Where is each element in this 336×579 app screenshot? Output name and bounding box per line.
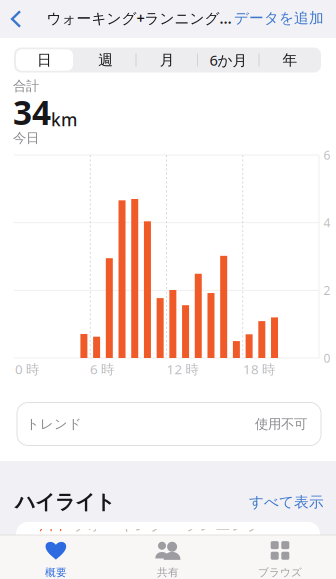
staticText: データを追加 (234, 9, 324, 27)
staticText: 0 時 (15, 360, 39, 378)
staticText: 合計 (13, 78, 39, 94)
staticText: トレンド (26, 416, 82, 432)
staticText: ブラウズ (258, 566, 302, 579)
staticText: 今日 (13, 130, 39, 146)
staticText: 日 (37, 51, 52, 69)
button[interactable]: データを追加 (231, 6, 327, 30)
staticText: ウォーキング+ランニング… (46, 8, 231, 28)
button[interactable]: 週 (75, 47, 136, 72)
button[interactable]: 概要 (0, 539, 112, 579)
staticText: 月 (160, 51, 175, 69)
staticText: 2 (323, 282, 330, 298)
button[interactable]: ブラウズ (224, 539, 336, 579)
button[interactable]: 6か月 (198, 47, 259, 72)
button[interactable]: 年 (259, 47, 320, 72)
staticText: 今日 (32, 514, 64, 534)
staticText: 0 (323, 350, 330, 366)
staticText: 4 (323, 215, 330, 231)
staticText: ウォーキング + ランニング (70, 513, 263, 534)
staticText: km (51, 108, 77, 131)
button[interactable]: 共有 (112, 539, 224, 579)
staticText: 34 (13, 90, 51, 134)
button[interactable]: トレンド (17, 402, 321, 445)
staticText: すべて表示 (249, 493, 324, 511)
staticText: 6 時 (90, 360, 114, 378)
staticText: 年 (282, 51, 297, 69)
staticText: 週 (98, 51, 113, 69)
staticText: 6か月 (209, 50, 247, 70)
staticText: 6 (323, 147, 330, 163)
button[interactable]: すべて表示 (246, 490, 327, 514)
staticText: ハイライト (15, 490, 115, 514)
staticText: 共有 (157, 566, 179, 579)
staticText: 使用不可 (255, 416, 307, 432)
button[interactable]: 戻る (0, 0, 32, 38)
staticText: 12 時 (166, 360, 198, 378)
staticText: 概要 (45, 566, 67, 579)
button[interactable]: 月 (137, 47, 198, 72)
button[interactable]: 日 (14, 47, 75, 72)
staticText: 18 時 (243, 360, 275, 378)
